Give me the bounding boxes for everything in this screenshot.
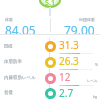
staticText: 内臓脂肪レベル [4,75,44,81]
staticText: 目標体重 [79,17,95,22]
button[interactable]: 内臓脂肪レベル [0,70,100,86]
button[interactable]: BMI detail [45,41,56,52]
button[interactable]: 体重 [0,16,50,34]
button[interactable]: 5.1 [39,0,61,8]
staticText: 84.05 [5,22,36,34]
button[interactable]: BMI [0,38,100,54]
staticText: レベル [87,79,98,83]
staticText: 体脂肪率 [4,59,44,65]
button[interactable]: 体脂肪率 [0,54,100,70]
button[interactable]: Body fat detail [45,57,56,68]
staticText: 5.1 [45,0,55,8]
button[interactable]: Visceral fat detail [45,73,56,84]
button[interactable]: 骨量 [0,86,100,100]
staticText: % [95,62,98,67]
staticText: BMI [4,43,44,49]
staticText: 31.3 [59,38,79,52]
staticText: 骨量 [4,90,44,96]
staticText: 26.3 [59,54,79,68]
staticText: kg [93,94,98,99]
staticText: 79.00 [64,22,95,34]
staticText: 12 [59,70,71,84]
button[interactable]: Bone mass detail [45,88,56,99]
button[interactable]: 目標体重 [50,16,100,34]
staticText: 2.7 [59,86,74,100]
staticText: 体重 [5,17,13,22]
